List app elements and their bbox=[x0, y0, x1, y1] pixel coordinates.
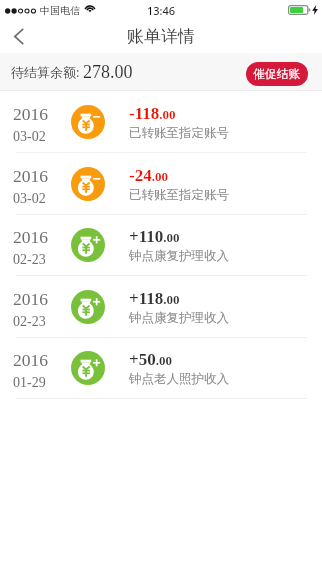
button[interactable]: 2016 bbox=[0, 214, 322, 276]
staticText: 2016 bbox=[13, 166, 48, 185]
staticText: 02-23 bbox=[13, 252, 46, 268]
staticText: 钟点康复护理收入 bbox=[129, 248, 229, 264]
staticText: 钟点康复护理收入 bbox=[129, 310, 229, 326]
staticText: 13:46 bbox=[147, 3, 176, 18]
staticText: 278.00 bbox=[83, 62, 133, 82]
staticText: +118.00 bbox=[129, 289, 180, 308]
staticText: 2016 bbox=[13, 289, 48, 308]
button[interactable]: 2016 bbox=[0, 91, 322, 153]
staticText: 钟点老人照护收入 bbox=[129, 371, 229, 387]
staticText: 中国电信 bbox=[40, 4, 80, 17]
staticText: -24.00 bbox=[129, 166, 168, 185]
staticText: +50.00 bbox=[129, 350, 172, 369]
staticText: 已转账至指定账号 bbox=[129, 125, 229, 141]
staticText: -118.00 bbox=[129, 104, 176, 123]
button[interactable]: 2016 bbox=[0, 276, 322, 338]
staticText: 待结算余额: bbox=[11, 63, 80, 81]
staticText: 03-02 bbox=[13, 191, 46, 207]
button[interactable]: 2016 bbox=[0, 337, 322, 399]
staticText: 已转账至指定账号 bbox=[129, 187, 229, 203]
button[interactable]: 2016 bbox=[0, 153, 322, 215]
button[interactable]: 催促结账 bbox=[246, 62, 308, 86]
staticText: 02-23 bbox=[13, 314, 46, 330]
staticText: 2016 bbox=[13, 227, 48, 246]
staticText: 2016 bbox=[13, 104, 48, 123]
button[interactable]: Back bbox=[0, 20, 44, 53]
staticText: 03-02 bbox=[13, 129, 46, 145]
staticText: 01-29 bbox=[13, 375, 46, 391]
staticText: 催促结账 bbox=[253, 67, 301, 82]
staticText: 账单详情 bbox=[127, 26, 195, 47]
staticText: 2016 bbox=[13, 350, 48, 369]
staticText: +110.00 bbox=[129, 227, 180, 246]
